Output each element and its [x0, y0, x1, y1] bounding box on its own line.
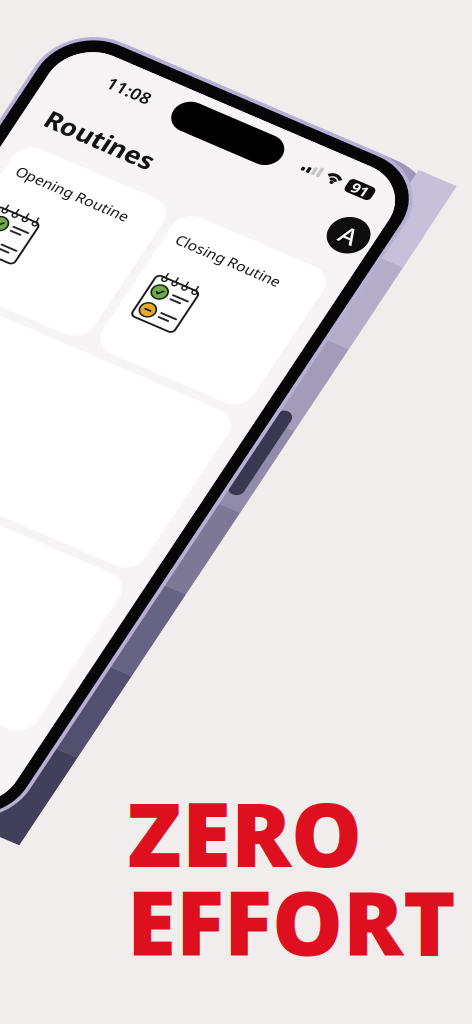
staticText: 0: [147, 644, 165, 687]
staticText: Routines: [96, 114, 219, 151]
button[interactable]: Closing Routine: [274, 169, 448, 352]
staticText: Closing: [101, 604, 157, 625]
button[interactable]: Closing: [89, 582, 448, 792]
staticText: EFFORT: [127, 862, 456, 980]
staticText: Opening Routine: [101, 191, 229, 212]
staticText: 11:08: [130, 55, 179, 80]
button[interactable]: Pooling: [89, 362, 448, 572]
staticText: Closing Routine: [286, 191, 405, 212]
button[interactable]: Opening Routine: [89, 169, 264, 352]
staticText: ZERO: [127, 773, 362, 892]
